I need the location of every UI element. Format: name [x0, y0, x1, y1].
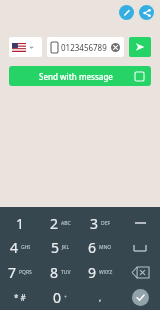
staticText: , — [99, 292, 102, 303]
staticText: WXYZ — [99, 269, 113, 276]
staticText: 0 — [53, 288, 62, 307]
button[interactable]: * # — [0, 285, 40, 310]
staticText: 3 — [90, 214, 99, 233]
button[interactable]: Dash — [120, 211, 160, 235]
staticText: 7 — [8, 263, 17, 282]
button[interactable] — [9, 37, 42, 57]
staticText: MNO — [99, 244, 112, 251]
button[interactable]: Share — [139, 5, 154, 20]
button[interactable]: Backspace — [120, 260, 160, 285]
staticText: 0123456789 — [61, 42, 107, 53]
button[interactable]: 0 — [40, 285, 80, 310]
staticText: Send with message — [39, 71, 113, 82]
staticText: GHI — [21, 244, 31, 251]
staticText: 2 — [50, 214, 59, 233]
staticText: 4 — [10, 238, 19, 257]
button[interactable]: Send with message — [9, 66, 151, 86]
button[interactable]: Space — [120, 235, 160, 260]
staticText: ABC — [61, 220, 71, 227]
button[interactable]: Clear — [111, 43, 120, 52]
button[interactable]: Done — [120, 285, 160, 310]
staticText: 6 — [88, 238, 97, 257]
button[interactable]: 6 — [80, 235, 120, 260]
staticText: 5 — [51, 238, 60, 257]
staticText: DEF — [101, 220, 111, 227]
button[interactable]: Edit — [119, 5, 134, 20]
staticText: 9 — [88, 263, 97, 282]
button[interactable]: 9 — [80, 260, 120, 285]
button[interactable]: 1 — [0, 211, 40, 235]
staticText: PQRS — [19, 269, 32, 276]
button[interactable]: 7 — [0, 260, 40, 285]
button[interactable]: , — [80, 285, 120, 310]
button[interactable]: 2 — [40, 211, 80, 235]
button[interactable]: 3 — [80, 211, 120, 235]
staticText: JKL — [62, 244, 70, 251]
staticText: + — [64, 294, 67, 301]
staticText: * # — [14, 292, 26, 303]
staticText: TUV — [61, 269, 71, 276]
button[interactable]: 5 — [40, 235, 80, 260]
button[interactable]: 0123456789 — [47, 37, 124, 57]
staticText: 1 — [16, 214, 25, 233]
staticText: 8 — [50, 263, 59, 282]
button[interactable]: 4 — [0, 235, 40, 260]
button[interactable]: 8 — [40, 260, 80, 285]
button[interactable]: Send — [129, 37, 151, 57]
